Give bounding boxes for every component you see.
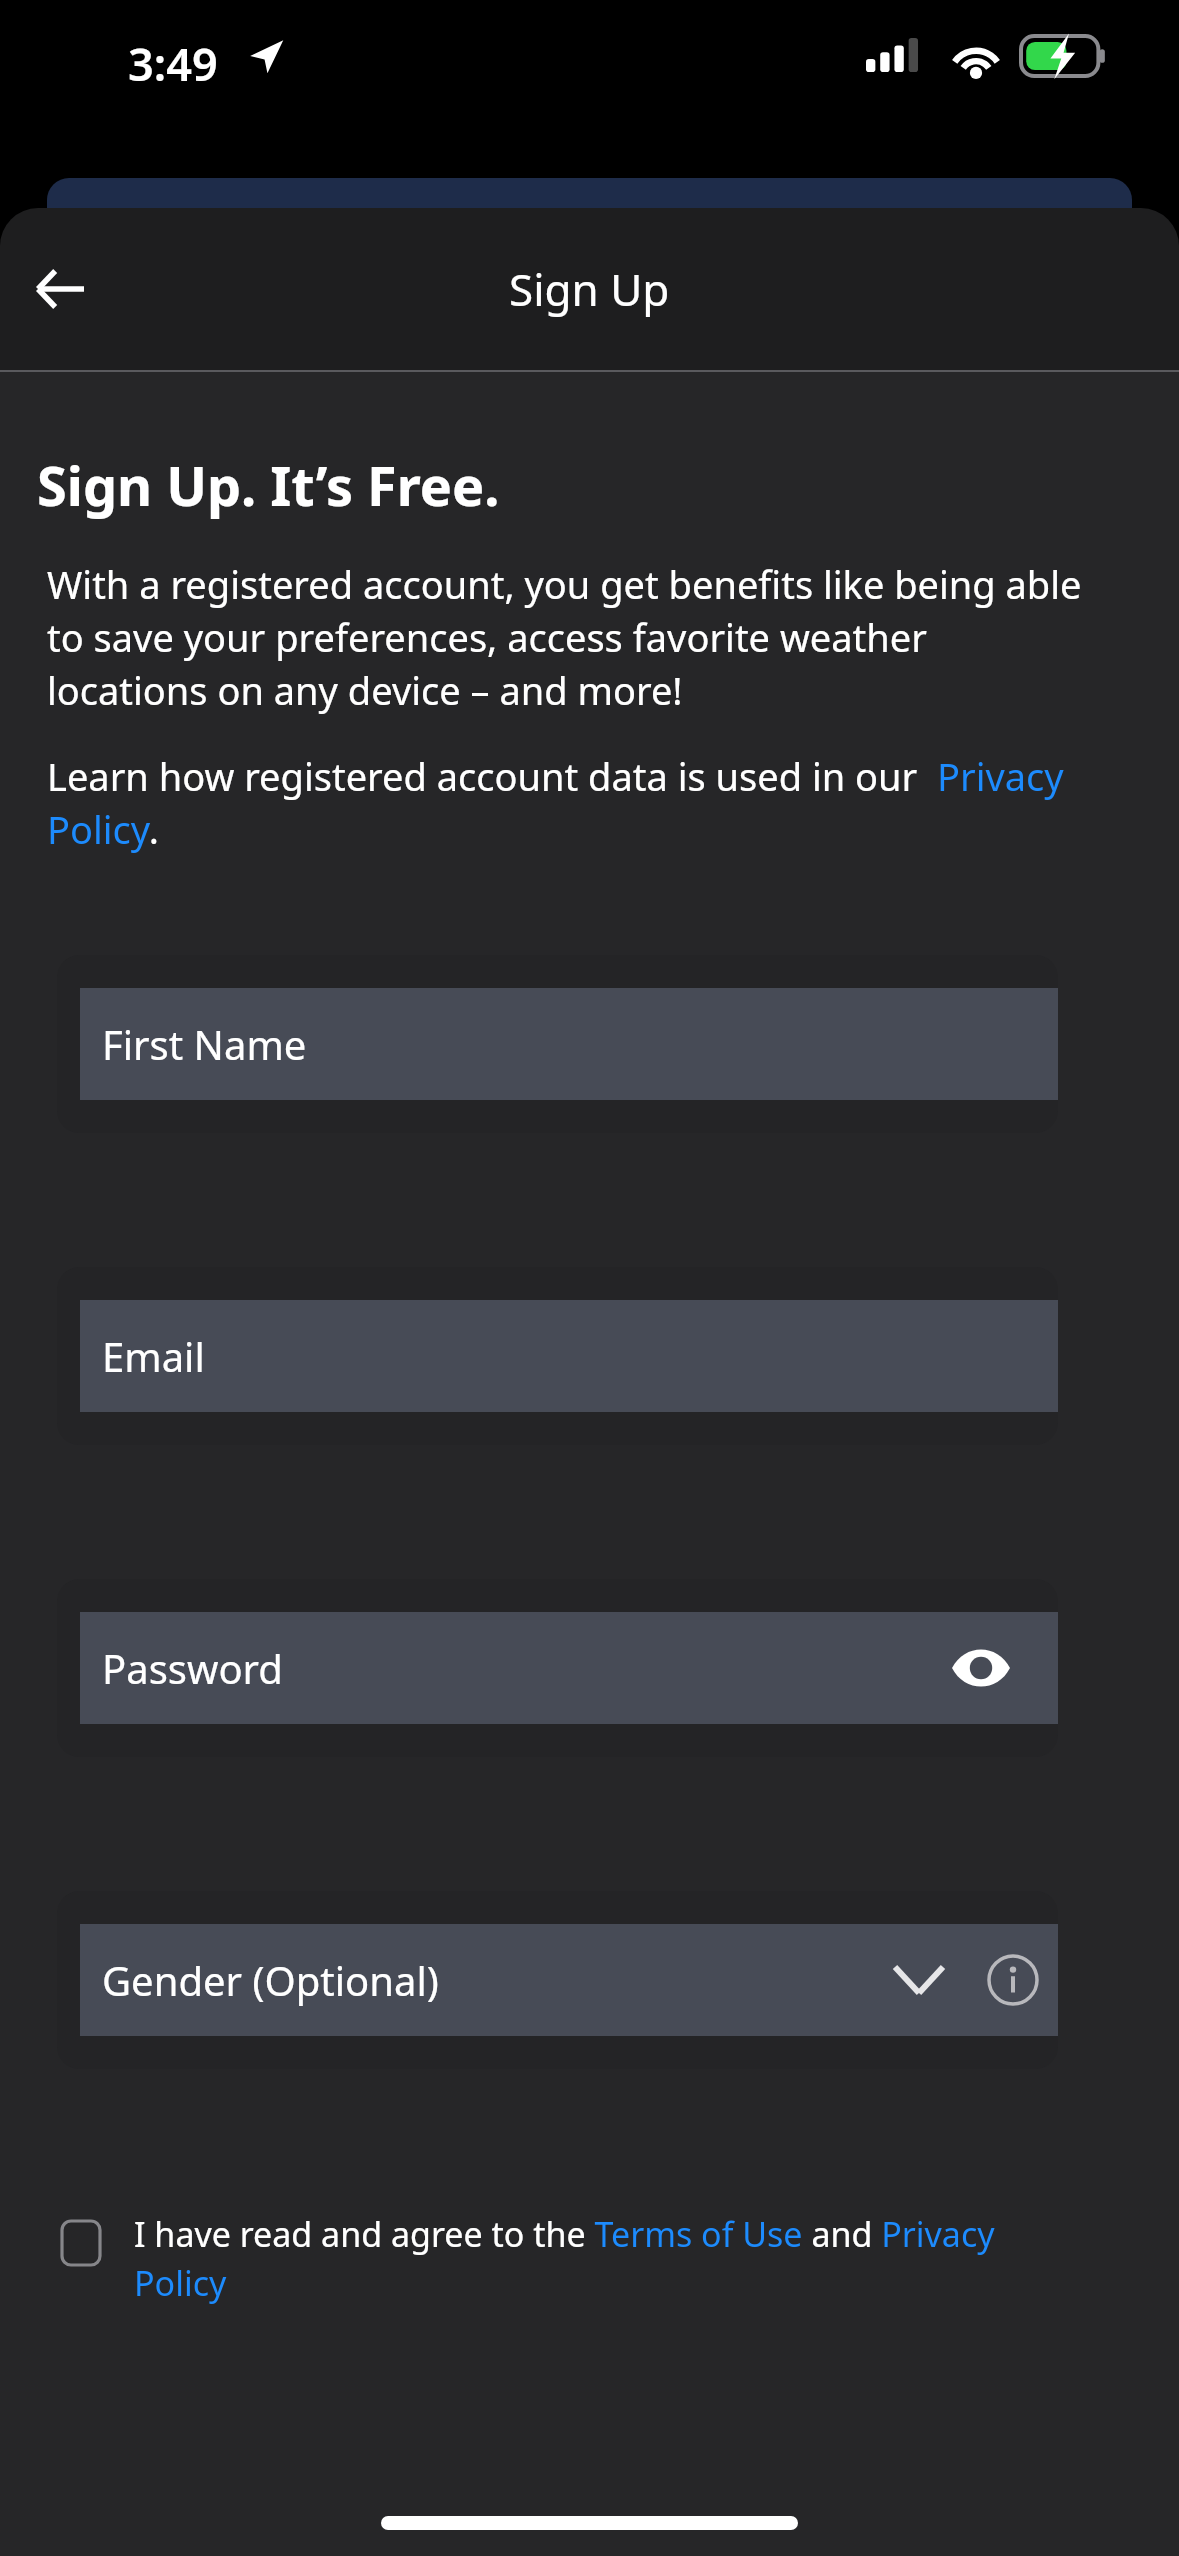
button[interactable]: Open gender menu [886,1947,952,2013]
staticText: Sign Up. It’s Free. [37,448,500,522]
staticText: Gender (Optional) [102,1953,886,2007]
staticText: I have read and agree to the Terms of Us… [134,2211,1069,2306]
staticText: Sign Up [509,259,670,319]
staticText: Learn how registered account data is use… [47,750,1124,855]
button[interactable]: Gender information [980,1947,1046,2013]
button[interactable]: First Name [57,955,1058,1133]
staticText: First Name [102,1017,1058,1071]
staticText: Email [102,1329,1058,1383]
staticText: With a registered account, you get benef… [47,558,1084,716]
staticText: Password [102,1641,948,1695]
button[interactable]: I have read and agree to the Terms of Us… [62,2211,1069,2306]
button[interactable]: Email [57,1267,1058,1445]
button[interactable]: Show password [948,1635,1014,1701]
button[interactable]: Password [57,1579,1058,1757]
button[interactable]: Back [16,245,104,333]
button[interactable]: Gender (Optional) [57,1891,1058,2069]
staticText: 3:49 [128,33,218,94]
